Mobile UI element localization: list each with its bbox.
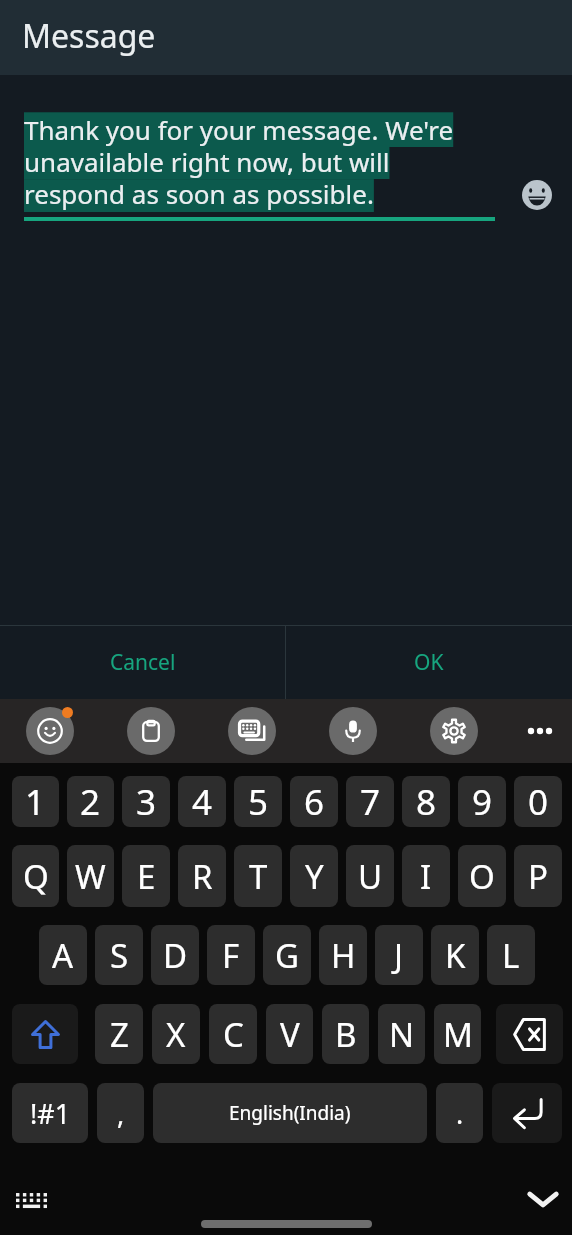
staticText: Y xyxy=(305,854,324,899)
button[interactable]: 7 xyxy=(346,776,394,827)
staticText: R xyxy=(192,854,213,899)
button[interactable]: 2 xyxy=(67,776,114,827)
staticText: C xyxy=(223,1012,244,1057)
button[interactable]: N xyxy=(378,1004,425,1064)
button[interactable]: I xyxy=(402,845,450,907)
button[interactable]: 9 xyxy=(458,776,506,827)
staticText: G xyxy=(275,933,300,978)
staticText: 1 xyxy=(25,778,46,826)
button[interactable]: Keyboard themes xyxy=(228,707,276,755)
button[interactable]: Voice input xyxy=(329,707,377,755)
button[interactable]: 4 xyxy=(178,776,226,827)
button[interactable]: OK xyxy=(286,626,572,699)
staticText: OK xyxy=(414,648,444,677)
staticText: 9 xyxy=(472,778,493,826)
staticText: X xyxy=(166,1012,186,1057)
staticText: A xyxy=(52,933,74,978)
button[interactable]: C xyxy=(209,1004,257,1064)
staticText: Cancel xyxy=(110,648,176,677)
button[interactable]: More options xyxy=(518,709,562,753)
staticText: U xyxy=(358,854,383,899)
staticText: B xyxy=(335,1012,357,1057)
button[interactable]: . xyxy=(436,1083,483,1143)
button[interactable]: Switch keyboard layout xyxy=(7,1175,55,1223)
staticText: T xyxy=(249,854,268,899)
button[interactable]: L xyxy=(487,925,535,985)
staticText: F xyxy=(222,933,240,978)
button[interactable]: X xyxy=(152,1004,200,1064)
button[interactable]: W xyxy=(67,845,114,907)
staticText: 5 xyxy=(248,778,269,826)
staticText: E xyxy=(137,854,156,899)
button[interactable]: K xyxy=(431,925,479,985)
button[interactable]: A xyxy=(39,925,87,985)
staticText: J xyxy=(394,933,404,978)
button[interactable]: M xyxy=(434,1004,481,1064)
button[interactable]: Insert emoji xyxy=(513,171,561,219)
button[interactable]: 1 xyxy=(12,776,59,827)
staticText: N xyxy=(389,1012,415,1057)
staticText: Thank you for your message. We're unavai… xyxy=(24,112,464,212)
button[interactable]: 0 xyxy=(514,776,562,827)
button[interactable]: English(India) xyxy=(153,1083,427,1143)
button[interactable]: V xyxy=(266,1004,313,1064)
staticText: I xyxy=(420,854,432,899)
staticText: 4 xyxy=(192,778,213,826)
button[interactable]: R xyxy=(178,845,226,907)
staticText: , xyxy=(117,1095,125,1132)
button[interactable]: Backspace xyxy=(496,1004,563,1064)
staticText: 2 xyxy=(80,778,101,826)
button[interactable]: Shift xyxy=(12,1004,78,1064)
button[interactable]: E xyxy=(122,845,170,907)
staticText: English(India) xyxy=(229,1100,351,1126)
button[interactable]: H xyxy=(319,925,367,985)
button[interactable]: O xyxy=(458,845,506,907)
staticText: !#1 xyxy=(30,1095,71,1132)
staticText: W xyxy=(75,854,106,899)
staticText: M xyxy=(443,1012,473,1057)
button[interactable]: !#1 xyxy=(12,1083,88,1143)
button[interactable]: Clipboard xyxy=(127,707,175,755)
button[interactable]: 3 xyxy=(122,776,170,827)
staticText: 6 xyxy=(304,778,325,826)
staticText: Q xyxy=(23,854,49,899)
button[interactable]: U xyxy=(346,845,394,907)
button[interactable]: J xyxy=(375,925,423,985)
staticText: 0 xyxy=(528,778,549,826)
staticText: Message xyxy=(22,14,156,58)
staticText: 7 xyxy=(360,778,381,826)
button[interactable]: Q xyxy=(12,845,59,907)
button[interactable]: Y xyxy=(290,845,338,907)
staticText: D xyxy=(163,933,188,978)
button[interactable]: Cancel xyxy=(0,626,285,699)
staticText: K xyxy=(445,933,466,978)
button[interactable]: G xyxy=(263,925,311,985)
button[interactable]: D xyxy=(151,925,199,985)
button[interactable]: Emoji xyxy=(26,707,74,755)
button[interactable]: Settings xyxy=(430,707,478,755)
staticText: L xyxy=(502,933,520,978)
staticText: Z xyxy=(110,1012,129,1057)
button[interactable]: Enter xyxy=(492,1083,562,1143)
staticText: H xyxy=(331,933,356,978)
button[interactable]: Z xyxy=(95,1004,143,1064)
button[interactable]: 8 xyxy=(402,776,450,827)
staticText: 3 xyxy=(136,778,157,826)
staticText: S xyxy=(110,933,129,978)
button[interactable]: B xyxy=(322,1004,369,1064)
button[interactable]: F xyxy=(207,925,255,985)
button[interactable]: Hide keyboard xyxy=(519,1175,567,1223)
button[interactable]: 5 xyxy=(234,776,282,827)
staticText: 8 xyxy=(416,778,437,826)
staticText: V xyxy=(280,1012,300,1057)
button[interactable]: 6 xyxy=(290,776,338,827)
staticText: O xyxy=(469,854,495,899)
button[interactable]: S xyxy=(95,925,143,985)
button[interactable]: , xyxy=(97,1083,144,1143)
staticText: . xyxy=(456,1095,464,1132)
button[interactable]: P xyxy=(514,845,562,907)
staticText: P xyxy=(528,854,548,899)
button[interactable]: T xyxy=(234,845,282,907)
